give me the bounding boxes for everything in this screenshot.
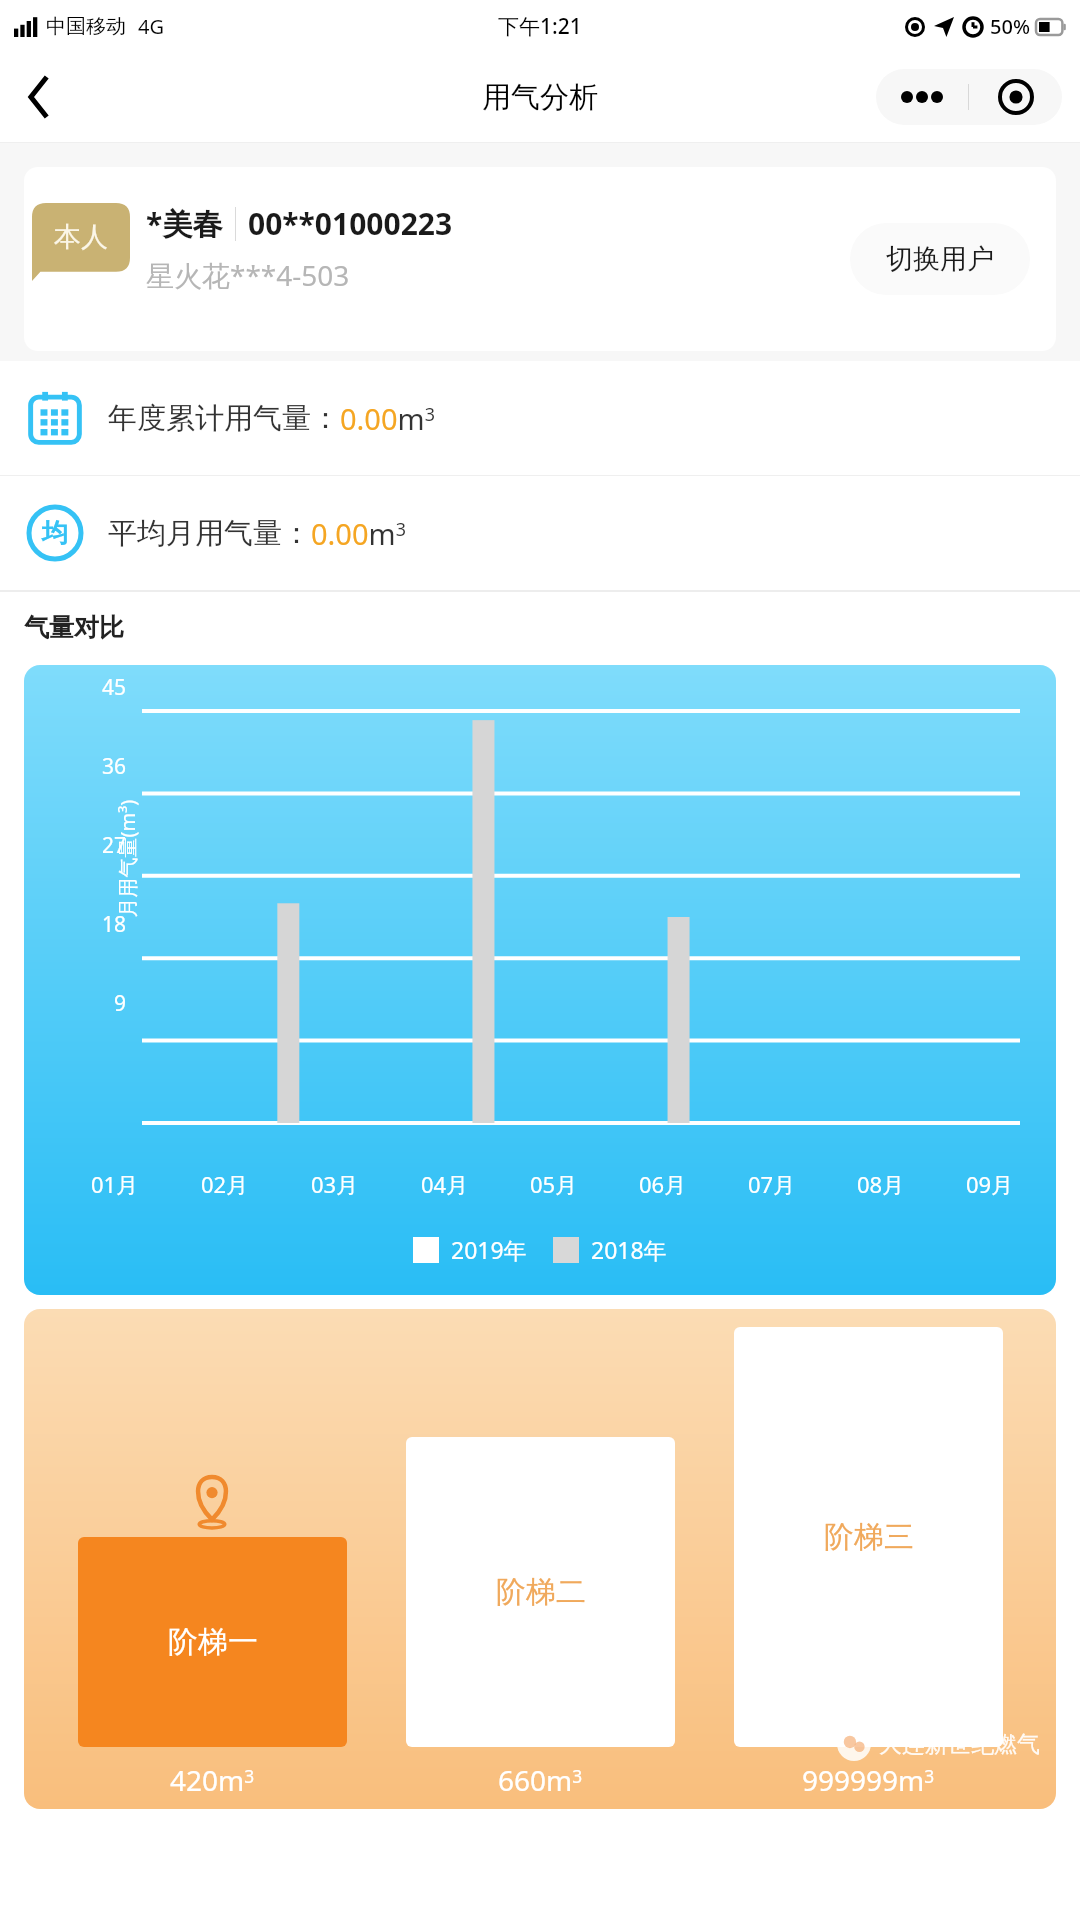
staticText: 03月	[311, 1169, 359, 1199]
staticText: 06月	[639, 1169, 687, 1199]
button[interactable]: 本人	[24, 167, 1056, 351]
staticText: 02月	[201, 1169, 249, 1199]
button[interactable]: 阶梯一	[48, 1477, 376, 1809]
button[interactable]: 切换用户	[850, 223, 1030, 295]
staticText: *美春	[146, 203, 223, 244]
button[interactable]: 阶梯三	[704, 1327, 1032, 1809]
staticText: 阶梯一	[168, 1623, 258, 1661]
staticText: 0.00m3	[311, 514, 406, 553]
button[interactable]: 更多	[876, 69, 968, 125]
button[interactable]: 均	[0, 476, 1080, 590]
staticText: 4G	[138, 13, 164, 40]
staticText: 阶梯二	[496, 1573, 586, 1611]
staticText: 2019年	[451, 1234, 527, 1265]
staticText: 阶梯三	[824, 1518, 914, 1556]
staticText: 36	[86, 752, 126, 781]
staticText: 切换用户	[886, 242, 994, 276]
staticText: 2018年	[591, 1234, 667, 1265]
staticText: 45	[86, 673, 126, 702]
staticText: 04月	[421, 1169, 469, 1199]
staticText: 大连新世纪燃气	[879, 1730, 1040, 1759]
staticText: 0.00m3	[340, 399, 435, 438]
staticText: 50%	[990, 13, 1030, 40]
staticText: 999999m3	[802, 1761, 935, 1799]
button[interactable]: 阶梯二	[376, 1437, 704, 1809]
staticText: 27	[86, 831, 126, 860]
staticText: 年度累计用气量：	[108, 400, 340, 437]
staticText: 08月	[857, 1169, 905, 1199]
staticText: 660m3	[498, 1761, 583, 1799]
staticText: 01月	[91, 1169, 139, 1199]
staticText: 星火花***4-503	[146, 256, 350, 294]
button[interactable]: 年度累计用气量：	[0, 361, 1080, 475]
staticText: 07月	[748, 1169, 796, 1199]
staticText: 09月	[966, 1169, 1014, 1199]
staticText: 用气分析	[482, 79, 598, 116]
staticText: 本人	[54, 220, 108, 254]
staticText: 00**01000223	[248, 203, 453, 244]
button[interactable]: 返回	[12, 69, 68, 125]
staticText: 420m3	[170, 1761, 255, 1799]
staticText: 平均月用气量：	[108, 515, 311, 552]
button[interactable]: 关闭	[969, 69, 1062, 125]
staticText: 中国移动	[46, 14, 126, 39]
staticText: 18	[86, 910, 126, 939]
staticText: 气量对比	[24, 612, 124, 643]
staticText: 月用气量(m³)	[113, 799, 140, 917]
staticText: 9	[86, 989, 126, 1018]
staticText: 下午1:21	[498, 12, 582, 41]
staticText: 05月	[530, 1169, 578, 1199]
staticText: 均	[42, 517, 68, 550]
